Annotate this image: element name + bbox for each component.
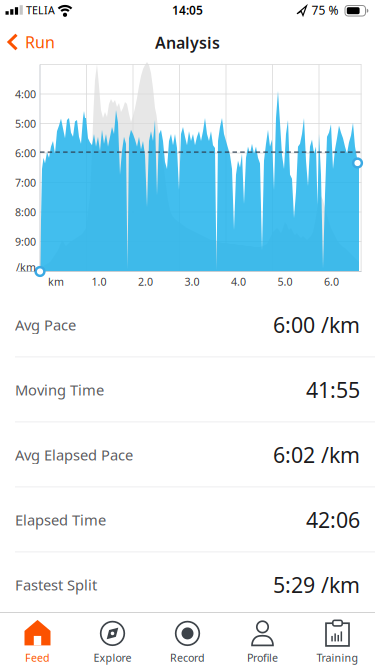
staticText: Explore [93,650,131,665]
button[interactable]: Run [7,31,55,53]
staticText: 4:00 [15,87,36,101]
staticText: Elapsed Time [15,510,106,530]
staticText: km [48,274,64,289]
staticText: Training [316,650,358,665]
staticText: 3.0 [184,274,199,289]
button[interactable]: Record [152,617,222,667]
button[interactable]: Profile [227,617,297,667]
staticText: 2.0 [138,274,153,289]
staticText: TELIA [26,3,55,17]
staticText: Profile [247,650,278,665]
button[interactable]: Feed [2,617,72,667]
staticText: Moving Time [15,380,104,400]
staticText: 75 % [311,2,338,18]
staticText: Fastest Split [15,575,97,595]
staticText: 1.0 [91,274,106,289]
staticText: 5:00 [15,116,36,131]
staticText: 42:06 [306,506,360,534]
staticText: 6:00 [15,146,36,160]
staticText: Avg Pace [15,315,76,335]
staticText: 7:00 [15,175,36,190]
staticText: 5.0 [277,274,292,289]
button[interactable]: Training [302,617,372,667]
staticText: 6:02 /km [273,441,360,469]
staticText: 8:00 [15,205,36,219]
staticText: Feed [25,650,50,665]
staticText: Avg Elapsed Pace [15,445,133,465]
staticText: 6:00 /km [273,311,360,339]
button[interactable]: Explore [77,617,147,667]
staticText: 4.0 [231,274,246,289]
staticText: 9:00 [15,234,36,249]
staticText: /km [16,260,36,274]
staticText: 14:05 [172,2,203,18]
staticText: Analysis [155,32,220,53]
staticText: Record [170,650,205,665]
staticText: Run [25,31,55,53]
staticText: 6.0 [324,274,339,289]
staticText: 41:55 [306,376,360,404]
staticText: 5:29 /km [273,571,360,599]
